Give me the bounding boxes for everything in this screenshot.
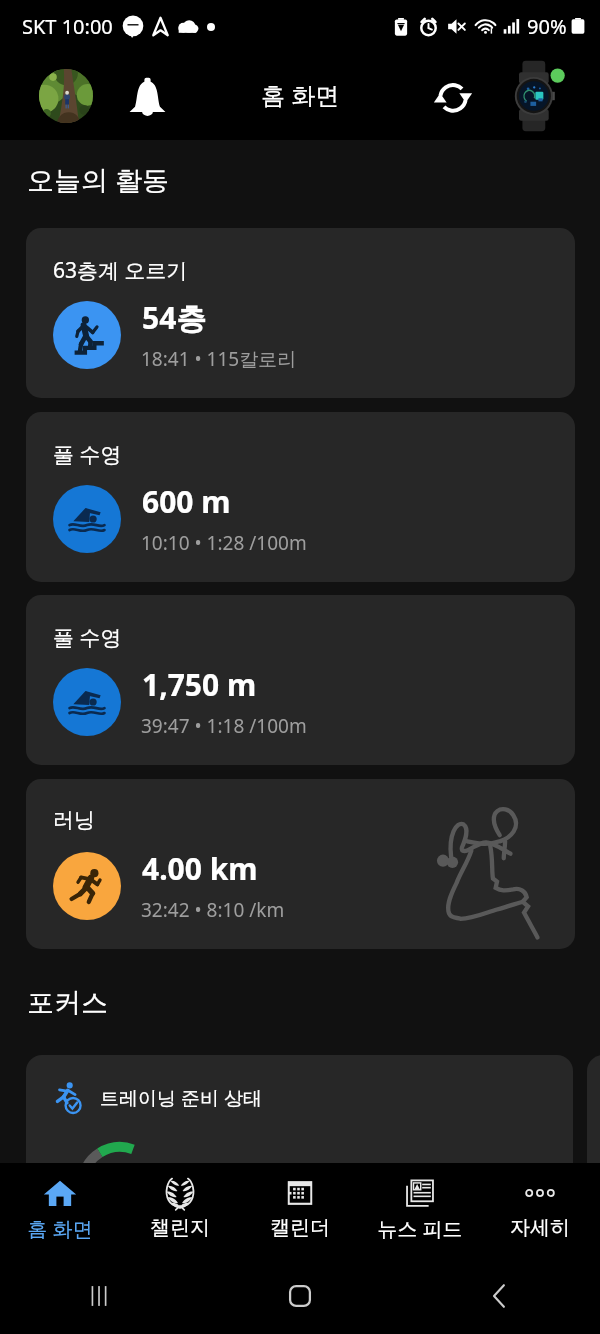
button[interactable]: 러닝 — [26, 779, 575, 949]
staticText: 10:10 • 1:28 /100m — [141, 530, 307, 556]
button[interactable]: Notifications — [118, 68, 176, 126]
button[interactable]: 자세히 — [480, 1163, 600, 1258]
staticText: 오늘의 활동 — [27, 161, 170, 198]
staticText: 600 m — [142, 481, 231, 522]
button[interactable]: Connected watch — [508, 62, 576, 130]
button[interactable]: Back — [400, 1258, 600, 1334]
staticText: 러닝 — [53, 807, 95, 833]
staticText: 32:42 • 8:10 /km — [141, 897, 285, 923]
staticText: 포커스 — [27, 986, 108, 1020]
button[interactable]: 뉴스 피드 — [360, 1163, 480, 1258]
staticText: 풀 수영 — [53, 440, 122, 469]
button[interactable]: 트레이닝 준비 상태 — [26, 1055, 573, 1165]
staticText: 1,750 m — [142, 664, 257, 705]
staticText: 90% — [527, 13, 567, 40]
staticText: 39:47 • 1:18 /100m — [141, 713, 307, 739]
button[interactable]: 홈 화면 — [0, 1163, 120, 1258]
staticText: SKT 10:00 — [22, 13, 113, 40]
button[interactable]: 63층계 오르기 — [26, 228, 575, 398]
staticText: 챌린지 — [150, 1215, 210, 1240]
button[interactable]: 풀 수영 — [26, 595, 575, 765]
staticText: 뉴스 피드 — [377, 1215, 463, 1242]
button[interactable]: 챌린지 — [120, 1163, 240, 1258]
staticText: 4.00 km — [142, 848, 258, 889]
button[interactable]: Sync — [424, 68, 482, 126]
staticText: 54층 — [142, 297, 207, 338]
button[interactable]: Profile — [39, 69, 93, 123]
staticText: 홈 화면 — [261, 78, 340, 111]
staticText: 트레이닝 준비 상태 — [100, 1085, 262, 1111]
staticText: 63층계 오르기 — [53, 256, 188, 285]
button[interactable]: 캘린더 — [240, 1163, 360, 1258]
staticText: 캘린더 — [270, 1215, 330, 1240]
staticText: 풀 수영 — [53, 623, 122, 652]
staticText: 자세히 — [510, 1215, 570, 1240]
button[interactable]: Next focus card — [587, 1055, 600, 1165]
button[interactable]: 풀 수영 — [26, 412, 575, 582]
staticText: 홈 화면 — [27, 1215, 93, 1242]
button[interactable]: Home — [200, 1258, 400, 1334]
staticText: 18:41 • 115칼로리 — [141, 346, 297, 372]
button[interactable]: Recent apps — [0, 1258, 200, 1334]
